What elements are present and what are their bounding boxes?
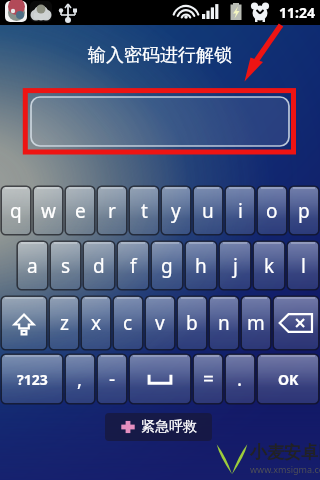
staticText: w bbox=[41, 198, 56, 224]
staticText: n bbox=[218, 310, 230, 336]
button[interactable]: z bbox=[48, 295, 80, 351]
staticText: p bbox=[298, 198, 310, 224]
staticText: c bbox=[123, 310, 133, 336]
button[interactable]: m bbox=[240, 295, 272, 351]
button[interactable]: Backspace bbox=[272, 295, 320, 351]
staticText: u bbox=[202, 198, 214, 224]
staticText: h bbox=[195, 253, 207, 279]
staticText: = bbox=[203, 366, 214, 392]
button[interactable]: f bbox=[116, 240, 150, 291]
staticText: OK bbox=[278, 370, 299, 389]
button[interactable]: w bbox=[32, 185, 64, 236]
button[interactable]: . bbox=[224, 353, 256, 405]
staticText: . bbox=[237, 366, 243, 392]
staticText: q bbox=[10, 198, 22, 224]
button[interactable]: Shift bbox=[0, 295, 48, 351]
button[interactable]: t bbox=[128, 185, 160, 236]
staticText: - bbox=[109, 366, 116, 392]
button[interactable]: x bbox=[80, 295, 112, 351]
staticText: www.xmsigma.com bbox=[250, 463, 320, 475]
staticText: e bbox=[75, 198, 86, 224]
button[interactable]: j bbox=[218, 240, 252, 291]
staticText: z bbox=[60, 310, 69, 336]
staticText: f bbox=[130, 253, 137, 279]
staticText: ?123 bbox=[17, 370, 48, 389]
button[interactable]: n bbox=[208, 295, 240, 351]
staticText: m bbox=[247, 310, 265, 336]
button[interactable]: v bbox=[144, 295, 176, 351]
staticText: v bbox=[155, 310, 165, 336]
button[interactable]: u bbox=[192, 185, 224, 236]
staticText: 输入密码进行解锁 bbox=[88, 44, 232, 67]
button[interactable]: e bbox=[64, 185, 96, 236]
button[interactable]: l bbox=[286, 240, 320, 291]
button[interactable]: a bbox=[16, 240, 49, 291]
button[interactable]: i bbox=[224, 185, 256, 236]
button[interactable]: p bbox=[288, 185, 320, 236]
staticText: y bbox=[171, 198, 181, 224]
button[interactable]: s bbox=[49, 240, 82, 291]
button[interactable]: k bbox=[252, 240, 286, 291]
staticText: 小麦安卓网 bbox=[250, 442, 320, 463]
staticText: 紧急呼救 bbox=[141, 418, 197, 436]
button[interactable]: q bbox=[0, 185, 32, 236]
staticText: i bbox=[238, 198, 243, 224]
button[interactable]: r bbox=[96, 185, 128, 236]
button[interactable]: b bbox=[176, 295, 208, 351]
staticText: x bbox=[91, 310, 102, 336]
button[interactable]: , bbox=[64, 353, 96, 405]
staticText: d bbox=[93, 253, 105, 279]
button[interactable]: Space bbox=[128, 353, 192, 405]
staticText: , bbox=[77, 366, 83, 392]
staticText: o bbox=[266, 198, 278, 224]
staticText: s bbox=[61, 253, 71, 279]
button[interactable]: y bbox=[160, 185, 192, 236]
staticText: k bbox=[264, 253, 275, 279]
button[interactable]: h bbox=[184, 240, 218, 291]
button[interactable]: g bbox=[150, 240, 184, 291]
staticText: g bbox=[161, 253, 173, 279]
button[interactable]: OK bbox=[256, 353, 320, 405]
button[interactable]: - bbox=[96, 353, 128, 405]
button[interactable]: d bbox=[82, 240, 116, 291]
staticText: 11:24 bbox=[279, 3, 315, 22]
staticText: r bbox=[108, 198, 116, 224]
staticText: t bbox=[141, 198, 148, 224]
staticText: j bbox=[233, 253, 238, 279]
staticText: a bbox=[27, 253, 38, 279]
staticText: b bbox=[186, 310, 198, 336]
button[interactable]: o bbox=[256, 185, 288, 236]
button[interactable]: ?123 bbox=[0, 353, 64, 405]
button[interactable]: c bbox=[112, 295, 144, 351]
button[interactable]: 紧急呼救 bbox=[105, 413, 212, 441]
button[interactable]: = bbox=[192, 353, 224, 405]
staticText: l bbox=[301, 253, 306, 279]
button[interactable] bbox=[31, 97, 289, 146]
